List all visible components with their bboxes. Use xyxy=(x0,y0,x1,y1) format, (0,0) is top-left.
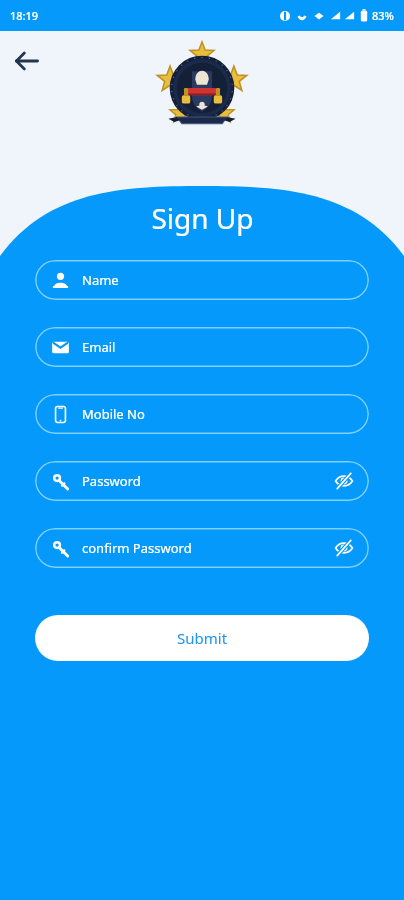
button[interactable]: Toggle password visibility xyxy=(327,531,361,565)
staticText: 18:19 xyxy=(10,8,39,23)
button[interactable]: Name xyxy=(35,260,369,300)
staticText: 83% xyxy=(372,8,394,23)
staticText: Submit xyxy=(177,628,228,648)
staticText: Name xyxy=(82,271,119,289)
button[interactable]: Password xyxy=(35,461,369,501)
staticText: confirm Password xyxy=(82,539,192,557)
staticText: Mobile No xyxy=(82,405,145,423)
button[interactable]: confirm Password xyxy=(35,528,369,568)
button[interactable]: Toggle password visibility xyxy=(327,464,361,498)
button[interactable]: Mobile No xyxy=(35,394,369,434)
staticText: Sign Up xyxy=(151,199,254,237)
button[interactable]: Email xyxy=(35,327,369,367)
button[interactable]: Back xyxy=(6,40,48,82)
staticText: Email xyxy=(82,338,116,356)
staticText: Password xyxy=(82,472,141,490)
button[interactable]: Submit xyxy=(35,615,369,661)
